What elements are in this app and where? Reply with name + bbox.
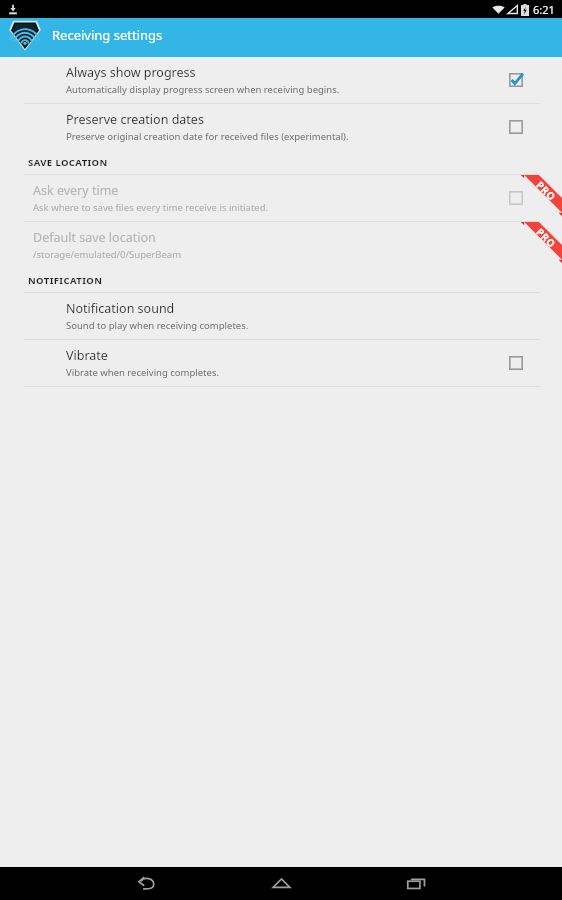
button[interactable]: Preserve creation dates bbox=[0, 104, 562, 150]
staticText: 6:21 bbox=[533, 2, 555, 17]
button[interactable]: Back bbox=[118, 867, 174, 900]
button[interactable]: Home bbox=[253, 867, 309, 900]
staticText: NOTIFICATION bbox=[28, 274, 103, 287]
other: SuperBeam logo bbox=[8, 18, 42, 52]
button[interactable]: Recent apps bbox=[388, 867, 444, 900]
other: PRO feature bbox=[520, 222, 562, 264]
other: Download bbox=[7, 3, 19, 15]
staticText: Default save location bbox=[33, 229, 156, 246]
staticText: Sound to play when receiving completes. bbox=[66, 319, 249, 332]
staticText: PRO bbox=[533, 225, 560, 251]
button[interactable]: Default save location bbox=[0, 222, 562, 268]
staticText: Preserve creation dates bbox=[66, 111, 204, 128]
staticText: Vibrate when receiving completes. bbox=[66, 366, 219, 379]
button[interactable]: Ask every time bbox=[0, 175, 562, 221]
other: PRO feature bbox=[520, 175, 562, 217]
staticText: Vibrate bbox=[66, 347, 108, 364]
staticText: PRO bbox=[533, 178, 560, 204]
button[interactable]: Notification sound bbox=[0, 293, 562, 339]
staticText: Notification sound bbox=[66, 300, 175, 317]
staticText: Receiving settings bbox=[52, 26, 163, 44]
staticText: Ask every time bbox=[33, 182, 119, 199]
staticText: /storage/emulated/0/SuperBeam bbox=[33, 248, 182, 261]
staticText: Automatically display progress screen wh… bbox=[66, 83, 340, 96]
staticText: Always show progress bbox=[66, 64, 196, 81]
staticText: SAVE LOCATION bbox=[28, 156, 108, 169]
button[interactable]: Always show progress bbox=[0, 57, 562, 103]
staticText: Preserve original creation date for rece… bbox=[66, 130, 349, 143]
staticText: Ask where to save files every time recei… bbox=[33, 201, 269, 214]
button[interactable]: Vibrate bbox=[0, 340, 562, 386]
